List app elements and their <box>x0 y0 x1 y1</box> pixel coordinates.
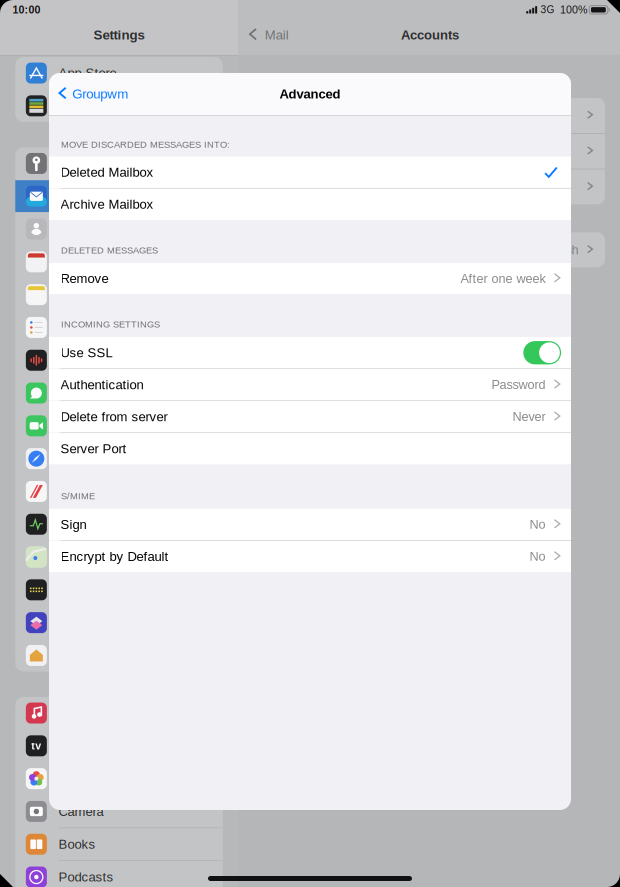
staticText: Books <box>58 837 95 852</box>
button[interactable]: FaceTime <box>15 410 223 442</box>
button[interactable]: Notes <box>15 279 223 311</box>
staticText: FaceTime <box>58 419 115 433</box>
button[interactable]: Passwords <box>15 147 223 179</box>
button[interactable]: Calendar <box>15 246 223 278</box>
staticText: Voice Memos <box>58 353 137 368</box>
staticText: DELETED MESSAGES <box>61 245 158 255</box>
staticText: Stocks <box>58 517 99 532</box>
staticText: Calendar <box>58 255 109 269</box>
button[interactable]: Archive Mailbox <box>49 189 571 220</box>
staticText: App Store <box>58 66 116 80</box>
button[interactable]: tv <box>15 730 223 762</box>
staticText: S/MIME <box>61 491 95 501</box>
staticText: 3G <box>540 4 554 15</box>
staticText: Reminders <box>58 320 120 335</box>
button[interactable]: Photos <box>15 763 223 795</box>
button[interactable]: App Store <box>15 57 223 89</box>
staticText: Maps <box>58 550 90 564</box>
staticText: Notes <box>58 287 92 302</box>
staticText: Safari <box>58 451 92 466</box>
button[interactable]: Translate <box>15 574 223 606</box>
staticText: Server Port <box>60 441 126 456</box>
staticText: Mail <box>58 189 82 204</box>
button[interactable]: Shortcuts <box>15 607 223 639</box>
staticText: After one week <box>460 271 545 286</box>
staticText: Groupwm <box>72 87 128 101</box>
staticText: Remove <box>60 271 108 286</box>
button[interactable]: Camera <box>15 795 223 827</box>
staticText: Mail <box>265 28 289 42</box>
staticText: INCOMING SETTINGS <box>61 319 160 330</box>
staticText: Authentication <box>60 377 143 392</box>
button[interactable]: Push <box>253 232 605 267</box>
button[interactable]: Music <box>15 697 223 729</box>
staticText: Accounts <box>401 28 459 42</box>
button[interactable] <box>253 134 605 169</box>
staticText: Password <box>491 378 545 392</box>
button[interactable] <box>253 98 605 133</box>
button[interactable]: Mail <box>15 180 223 212</box>
staticText: Encrypt by Default <box>60 549 168 564</box>
button[interactable]: Server Port <box>49 433 571 464</box>
button[interactable]: Authentication <box>49 369 571 400</box>
button[interactable]: News <box>15 475 223 507</box>
staticText: 10:00 <box>13 4 41 16</box>
button[interactable]: Reminders <box>15 311 223 343</box>
button[interactable]: Sign <box>49 509 571 540</box>
staticText: Passwords <box>58 156 122 171</box>
staticText: Never <box>512 410 545 424</box>
staticText: Podcasts <box>58 870 113 884</box>
staticText: tv <box>31 740 41 752</box>
button[interactable]: Safari <box>15 443 223 475</box>
staticText: No <box>529 549 545 564</box>
button[interactable]: Maps <box>15 541 223 573</box>
button[interactable]: Books <box>15 828 223 860</box>
button[interactable] <box>253 169 605 204</box>
staticText: Push <box>551 243 579 257</box>
staticText: No <box>529 517 545 532</box>
button[interactable]: Voice Memos <box>15 344 223 376</box>
staticText: Sign <box>60 517 86 532</box>
button[interactable]: Encrypt by Default <box>49 541 571 572</box>
staticText: News <box>58 484 90 499</box>
button[interactable]: Podcasts <box>15 861 223 887</box>
staticText: Archive Mailbox <box>60 197 153 212</box>
button[interactable]: Wallet <box>15 90 223 122</box>
button[interactable]: Groupwm <box>49 73 138 115</box>
staticText: Advanced <box>279 87 340 101</box>
staticText: Settings <box>93 28 144 42</box>
staticText: MOVE DISCARDED MESSAGES INTO: <box>61 139 230 150</box>
staticText: Messages <box>58 386 118 400</box>
button[interactable]: Home <box>15 639 223 671</box>
staticText: Camera <box>58 804 103 819</box>
button[interactable]: Messages <box>15 377 223 409</box>
staticText: Deleted Mailbox <box>60 165 153 180</box>
staticText: 100% <box>560 4 587 16</box>
staticText: Use SSL <box>60 345 112 360</box>
button[interactable]: Stocks <box>15 508 223 540</box>
button[interactable]: Delete from server <box>49 401 571 432</box>
button[interactable]: Contacts <box>15 213 223 245</box>
button[interactable]: Remove <box>49 263 571 294</box>
button[interactable]: Deleted Mailbox <box>49 157 571 188</box>
button[interactable]: Use SSL <box>49 337 571 368</box>
staticText: Delete from server <box>60 409 167 424</box>
